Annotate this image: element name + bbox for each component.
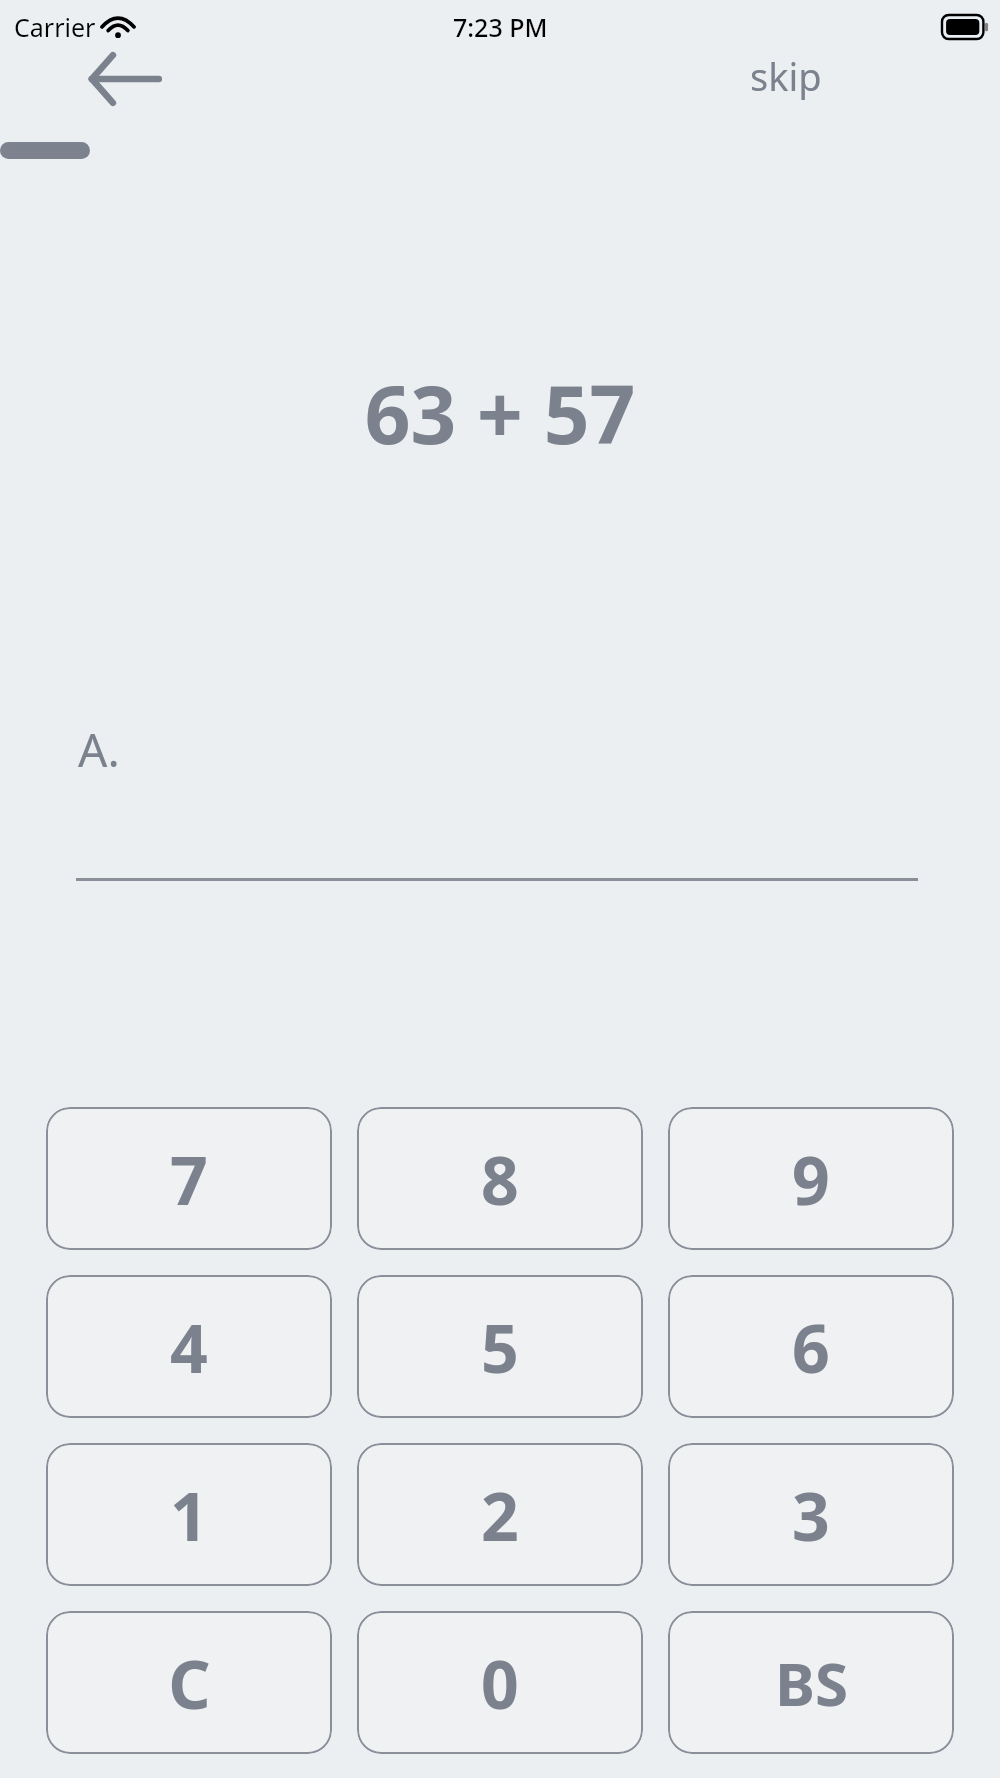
button[interactable]: Back [70,48,180,110]
staticText: 3 [792,1470,830,1560]
staticText: C [168,1638,211,1728]
staticText: 9 [792,1134,830,1224]
staticText: 5 [481,1302,519,1392]
button[interactable]: 6 [668,1275,954,1418]
button[interactable]: 7 [46,1107,332,1250]
button[interactable]: C [46,1611,332,1754]
staticText: 7:23 PM [453,10,548,44]
button[interactable]: 2 [357,1443,643,1586]
button[interactable]: 4 [46,1275,332,1418]
staticText: 7 [170,1134,208,1224]
button[interactable]: BS [668,1611,954,1754]
button[interactable]: 1 [46,1443,332,1586]
button[interactable]: 8 [357,1107,643,1250]
button[interactable]: 9 [668,1107,954,1250]
button[interactable]: 0 [357,1611,643,1754]
staticText: 1 [170,1470,208,1560]
staticText: 8 [481,1134,519,1224]
button[interactable]: skip [740,44,832,108]
staticText: skip [750,50,822,102]
staticText: BS [775,1642,848,1724]
button[interactable]: 3 [668,1443,954,1586]
button[interactable]: 5 [357,1275,643,1418]
staticText: 4 [170,1302,208,1392]
staticText: 2 [481,1470,519,1560]
staticText: Carrier [14,10,96,44]
staticText: 63 + 57 [0,358,1000,467]
staticText: 0 [481,1638,519,1728]
staticText: A. [78,718,120,781]
button[interactable]: A. [76,706,918,881]
staticText: 6 [792,1302,830,1392]
